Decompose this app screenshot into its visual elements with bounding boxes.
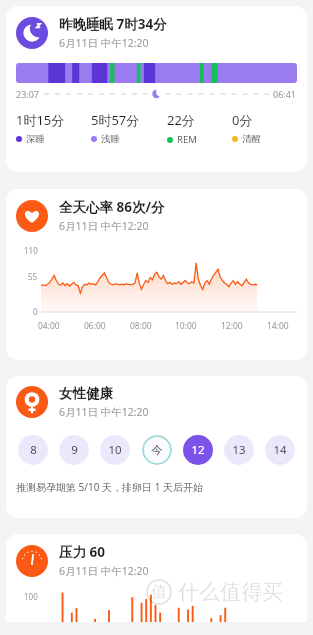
button[interactable]: 8 bbox=[18, 435, 48, 465]
staticText: 12 bbox=[191, 442, 205, 458]
button[interactable]: 12 bbox=[183, 435, 213, 465]
staticText: 清醒 bbox=[242, 133, 261, 145]
button[interactable]: 10 bbox=[100, 435, 130, 465]
staticText: 110 bbox=[24, 245, 38, 256]
staticText: 23:07 bbox=[16, 88, 40, 100]
staticText: 13 bbox=[232, 442, 246, 458]
other: Women's health bbox=[16, 386, 48, 418]
staticText: 今 bbox=[151, 443, 163, 457]
other: Sleep bbox=[16, 17, 48, 49]
staticText: 5时57分 bbox=[91, 111, 140, 129]
staticText: 0分 bbox=[232, 111, 253, 129]
staticText: 压力 60 bbox=[59, 543, 105, 561]
staticText: 推测易孕期第 5/10 天，排卵日 1 天后开始 bbox=[16, 480, 203, 494]
staticText: 6月11日 中午12:20 bbox=[59, 405, 149, 419]
staticText: 浅睡 bbox=[101, 133, 120, 145]
button[interactable]: 13 bbox=[224, 435, 254, 465]
staticText: 100 bbox=[24, 591, 38, 602]
staticText: 6月11日 中午12:20 bbox=[59, 36, 149, 50]
staticText: 全天心率 86次/分 bbox=[59, 198, 165, 216]
staticText: 10 bbox=[108, 442, 122, 458]
staticText: 0 bbox=[33, 306, 38, 317]
staticText: 女性健康 bbox=[59, 385, 113, 402]
button[interactable]: Sleep bbox=[6, 6, 307, 172]
staticText: 12:00 bbox=[221, 320, 243, 332]
button[interactable]: 今 bbox=[142, 435, 172, 465]
staticText: 6月11日 中午12:20 bbox=[59, 564, 149, 578]
button[interactable]: 14 bbox=[265, 435, 295, 465]
staticText: 06:00 bbox=[84, 320, 106, 332]
staticText: 08:00 bbox=[130, 320, 152, 332]
staticText: 8 bbox=[30, 442, 37, 458]
staticText: 14 bbox=[273, 442, 287, 458]
staticText: 06:41 bbox=[273, 88, 297, 100]
staticText: 9 bbox=[71, 442, 78, 458]
staticText: 1时15分 bbox=[16, 111, 65, 129]
staticText: 值 bbox=[151, 582, 167, 602]
staticText: 6月11日 中午12:20 bbox=[59, 219, 149, 233]
staticText: REM bbox=[177, 133, 197, 146]
staticText: 22分 bbox=[167, 111, 195, 129]
other: Heart rate bbox=[16, 200, 48, 232]
button[interactable]: Stress bbox=[6, 534, 307, 622]
staticText: 深睡 bbox=[26, 133, 45, 145]
other: Stress bbox=[16, 545, 48, 577]
staticText: 04:00 bbox=[38, 320, 60, 332]
staticText: 55 bbox=[28, 271, 38, 282]
staticText: 10:00 bbox=[175, 320, 197, 332]
staticText: 什么值得买 bbox=[178, 579, 283, 605]
button[interactable]: 9 bbox=[59, 435, 89, 465]
button[interactable]: Women's health bbox=[6, 376, 307, 518]
staticText: 14:00 bbox=[267, 320, 289, 332]
button[interactable]: Heart rate bbox=[6, 189, 307, 360]
staticText: 昨晚睡眠 7时34分 bbox=[59, 15, 167, 33]
